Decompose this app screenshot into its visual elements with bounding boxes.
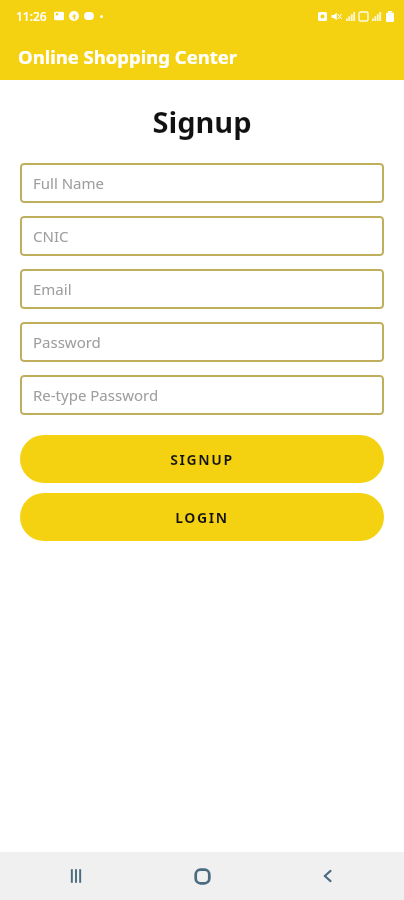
- button[interactable]: Full Name: [20, 163, 384, 203]
- staticText: Re-type Password: [33, 385, 159, 405]
- button[interactable]: SIGNUP: [20, 435, 384, 483]
- staticText: Email: [33, 279, 72, 299]
- staticText: Full Name: [33, 173, 104, 193]
- staticText: Signup: [152, 102, 252, 141]
- button[interactable]: LOGIN: [20, 493, 384, 541]
- button[interactable]: CNIC: [20, 216, 384, 256]
- button[interactable]: Re-type Password: [20, 375, 384, 415]
- button[interactable]: Email: [20, 269, 384, 309]
- staticText: Password: [33, 332, 101, 352]
- staticText: 11:26: [16, 8, 47, 24]
- staticText: LOGIN: [175, 508, 229, 527]
- button[interactable]: Password: [20, 322, 384, 362]
- staticText: CNIC: [33, 226, 69, 246]
- staticText: SIGNUP: [170, 450, 234, 469]
- button[interactable]: Back: [278, 852, 378, 900]
- button[interactable]: Recents: [26, 852, 126, 900]
- staticText: Online Shopping Center: [18, 44, 238, 69]
- button[interactable]: Home: [152, 852, 252, 900]
